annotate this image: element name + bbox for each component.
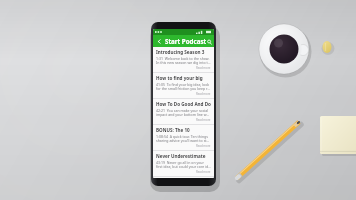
staticText: Read more [196, 92, 211, 96]
button[interactable]: How to find your big idea w/ Sparks Spa [153, 73, 214, 98]
staticText: Never Underestimate Your First Idea w/ T… [156, 153, 211, 159]
staticText: Read more [196, 170, 211, 174]
staticText: Start Podcast [165, 37, 207, 45]
staticText: Read more [196, 118, 211, 122]
staticText: 1:31 Welcome back to the show. In this n… [156, 56, 211, 65]
button[interactable]: How To Price Your Product To Scale w/ Cl… [153, 177, 214, 178]
staticText: BONUS: The 10 Commandments of Startup [156, 127, 211, 133]
staticText: Introducing Season 3 [156, 49, 205, 55]
staticText: 41:05 To find your big idea, look for th… [156, 82, 211, 91]
button[interactable]: How To Do Good And Do Good Business wit [153, 99, 214, 124]
button[interactable]: Never Underestimate Your First Idea w/ T… [153, 151, 214, 176]
staticText: 43:19 Never go all in on your first idea… [156, 160, 211, 169]
button[interactable]: Introducing Season 3 [153, 47, 214, 72]
staticText: Read more [196, 144, 211, 148]
staticText: How To Do Good And Do Good Business wit [156, 101, 211, 107]
staticText: 42:21 You can make your social impact an… [156, 108, 211, 117]
staticText: How to find your big idea w/ Sparks Spa [156, 75, 211, 81]
staticText: 1:08:54 A quick tour. Ten things sharing… [156, 134, 211, 143]
staticText: Read more [196, 66, 211, 70]
button[interactable]: Navigate up [155, 37, 164, 46]
button[interactable]: BONUS: The 10 Commandments of Startup [153, 125, 214, 150]
button[interactable]: Search [207, 37, 212, 46]
